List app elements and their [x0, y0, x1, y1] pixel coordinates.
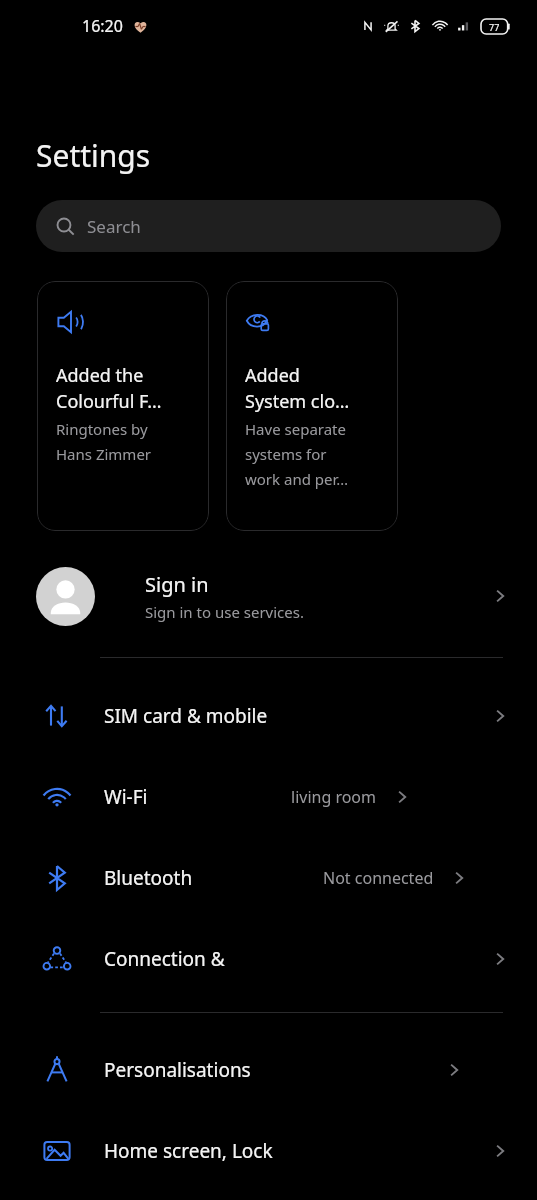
staticText: Added the Colourful F…	[56, 363, 162, 413]
button[interactable]: Connection & sharing	[0, 918, 537, 999]
staticText: 16:20	[82, 15, 123, 37]
staticText: Have separate systems for work and per…	[245, 419, 349, 489]
button[interactable]: Search	[36, 200, 501, 252]
staticText: Added System clo…	[245, 363, 350, 413]
staticText: Connection & sharing	[104, 946, 297, 972]
button[interactable]: Sign in	[0, 553, 537, 639]
button[interactable]: SIM card & mobile data	[0, 675, 537, 756]
button[interactable]: Added the Colourful F…	[37, 281, 209, 531]
staticText: living room	[291, 786, 377, 808]
staticText: Home screen, Lock screen &	[104, 1138, 297, 1164]
button[interactable]: Wi-Fi	[0, 756, 537, 837]
staticText: Wi-Fi	[104, 784, 148, 810]
staticText: Sign in to use services.	[145, 602, 304, 622]
button[interactable]: Bluetooth	[0, 837, 537, 918]
button[interactable]: Home screen, Lock screen &	[0, 1110, 537, 1191]
staticText: SIM card & mobile data	[104, 703, 297, 729]
staticText: Not connected	[323, 867, 434, 889]
staticText: Sign in	[145, 571, 209, 598]
staticText: Settings	[36, 135, 151, 176]
button[interactable]: Added System clo…	[226, 281, 398, 531]
staticText: Ringtones by Hans Zimmer	[56, 419, 152, 464]
staticText: Bluetooth	[104, 865, 193, 891]
button[interactable]: Personalisations	[0, 1029, 537, 1110]
staticText: 77	[489, 21, 500, 33]
staticText: Personalisations	[104, 1057, 251, 1083]
staticText: Search	[87, 215, 141, 238]
